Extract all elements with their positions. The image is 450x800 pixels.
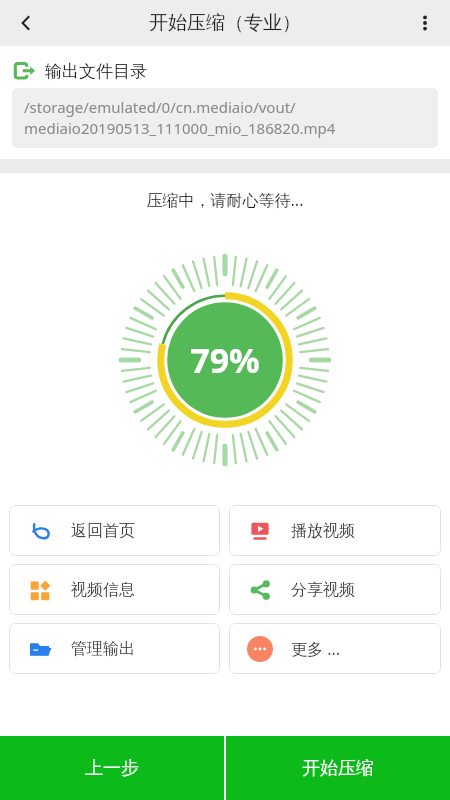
button[interactable]: 视频信息 <box>9 564 220 615</box>
button[interactable]: 播放视频 <box>229 505 441 556</box>
button[interactable]: Back <box>0 0 52 46</box>
button[interactable]: More options <box>400 0 450 46</box>
button[interactable]: 返回首页 <box>9 505 220 556</box>
staticText: 上一步 <box>85 757 139 780</box>
button[interactable]: 分享视频 <box>229 564 441 615</box>
staticText: 79% <box>190 337 260 383</box>
staticText: 返回首页 <box>71 521 135 541</box>
staticText: 开始压缩 <box>302 757 374 780</box>
staticText: 视频信息 <box>71 580 135 600</box>
staticText: 更多 ... <box>291 638 341 660</box>
staticText: 分享视频 <box>291 580 355 600</box>
button[interactable]: 开始压缩 <box>226 736 450 800</box>
staticText: 压缩中，请耐心等待... <box>0 189 450 211</box>
staticText: 管理输出 <box>71 639 135 659</box>
staticText: 开始压缩（专业） <box>149 11 301 35</box>
button[interactable]: 上一步 <box>0 736 224 800</box>
button[interactable]: 更多 ... <box>229 623 441 674</box>
button[interactable]: 管理输出 <box>9 623 220 674</box>
button[interactable]: /storage/emulated/0/cn.mediaio/vout/ med… <box>12 88 438 148</box>
staticText: 播放视频 <box>291 521 355 541</box>
staticText: 输出文件目录 <box>45 61 147 82</box>
staticText: /storage/emulated/0/cn.mediaio/vout/ med… <box>24 97 336 139</box>
